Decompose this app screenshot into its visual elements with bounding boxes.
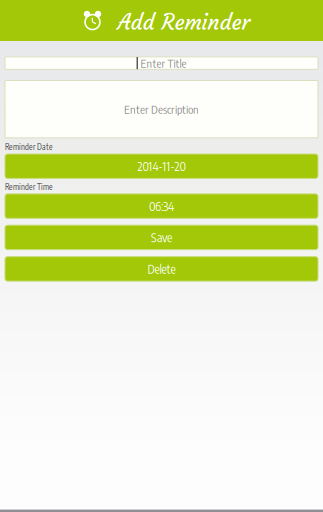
button[interactable]: Reminder time <box>5 194 318 218</box>
staticText: Enter Description <box>124 102 199 116</box>
staticText: Delete <box>147 261 175 276</box>
button[interactable]: Reminder date <box>5 154 318 178</box>
staticText: Reminder Date <box>5 142 53 152</box>
staticText: Reminder Time <box>5 182 53 192</box>
staticText: Add Reminder <box>117 9 250 36</box>
button[interactable]: Save <box>5 225 318 250</box>
staticText: Save <box>151 230 172 245</box>
staticText: 06:34 <box>149 199 174 214</box>
staticText: 2014-11-20 <box>137 159 185 174</box>
staticText: Enter Title <box>140 56 186 70</box>
button[interactable]: Delete <box>5 257 318 281</box>
